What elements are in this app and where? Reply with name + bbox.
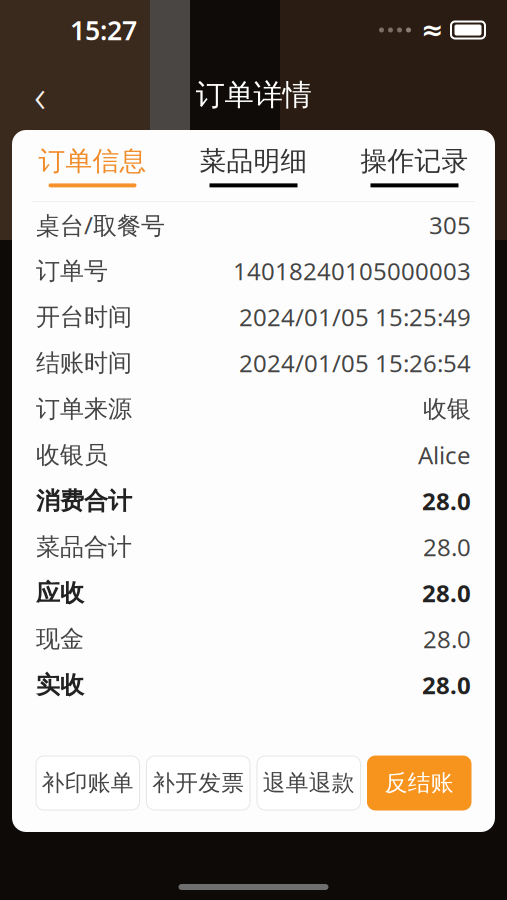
staticText: ≈ — [421, 15, 443, 45]
button[interactable]: 补开发票 — [146, 756, 250, 810]
staticText: 开台时间 — [36, 302, 132, 332]
button[interactable]: 订单信息 — [12, 135, 173, 197]
button[interactable]: 操作记录 — [334, 135, 495, 197]
staticText: 2024/01/05 15:26:54 — [239, 347, 471, 379]
staticText: Alice — [418, 439, 471, 471]
staticText: 收银员 — [36, 440, 108, 470]
staticText: 28.0 — [422, 669, 471, 701]
button[interactable]: Back — [14, 70, 66, 120]
staticText: 结账时间 — [36, 348, 132, 378]
staticText: 28.0 — [422, 485, 471, 517]
staticText: 反结账 — [385, 769, 454, 797]
staticText: 菜品合计 — [36, 532, 132, 562]
staticText: 订单详情 — [195, 77, 311, 113]
staticText: 应收 — [36, 578, 84, 608]
button[interactable]: 补印账单 — [36, 756, 139, 810]
staticText: 订单信息 — [38, 145, 146, 177]
staticText: 28.0 — [422, 577, 471, 609]
staticText: 305 — [429, 209, 471, 241]
staticText: 实收 — [36, 670, 84, 700]
staticText: ‹ — [34, 65, 46, 125]
staticText: 操作记录 — [360, 145, 468, 177]
staticText: 14018240105000003 — [233, 255, 471, 287]
staticText: 桌台/取餐号 — [36, 209, 165, 241]
staticText: 补印账单 — [42, 769, 134, 797]
staticText: 2024/01/05 15:25:49 — [239, 301, 471, 333]
staticText: 订单来源 — [36, 394, 132, 424]
staticText: 现金 — [36, 624, 84, 654]
staticText: 消费合计 — [36, 486, 132, 516]
staticText: 28.0 — [423, 623, 471, 655]
button[interactable]: 菜品明细 — [173, 135, 334, 197]
staticText: 退单退款 — [263, 769, 355, 797]
button[interactable]: 反结账 — [367, 756, 471, 810]
staticText: 菜品明细 — [199, 145, 307, 177]
staticText: 15:27 — [70, 12, 137, 48]
staticText: 28.0 — [423, 531, 471, 563]
staticText: 收银 — [423, 394, 471, 424]
button[interactable]: 退单退款 — [257, 756, 360, 810]
staticText: 订单号 — [36, 256, 108, 286]
staticText: 补开发票 — [152, 769, 244, 797]
